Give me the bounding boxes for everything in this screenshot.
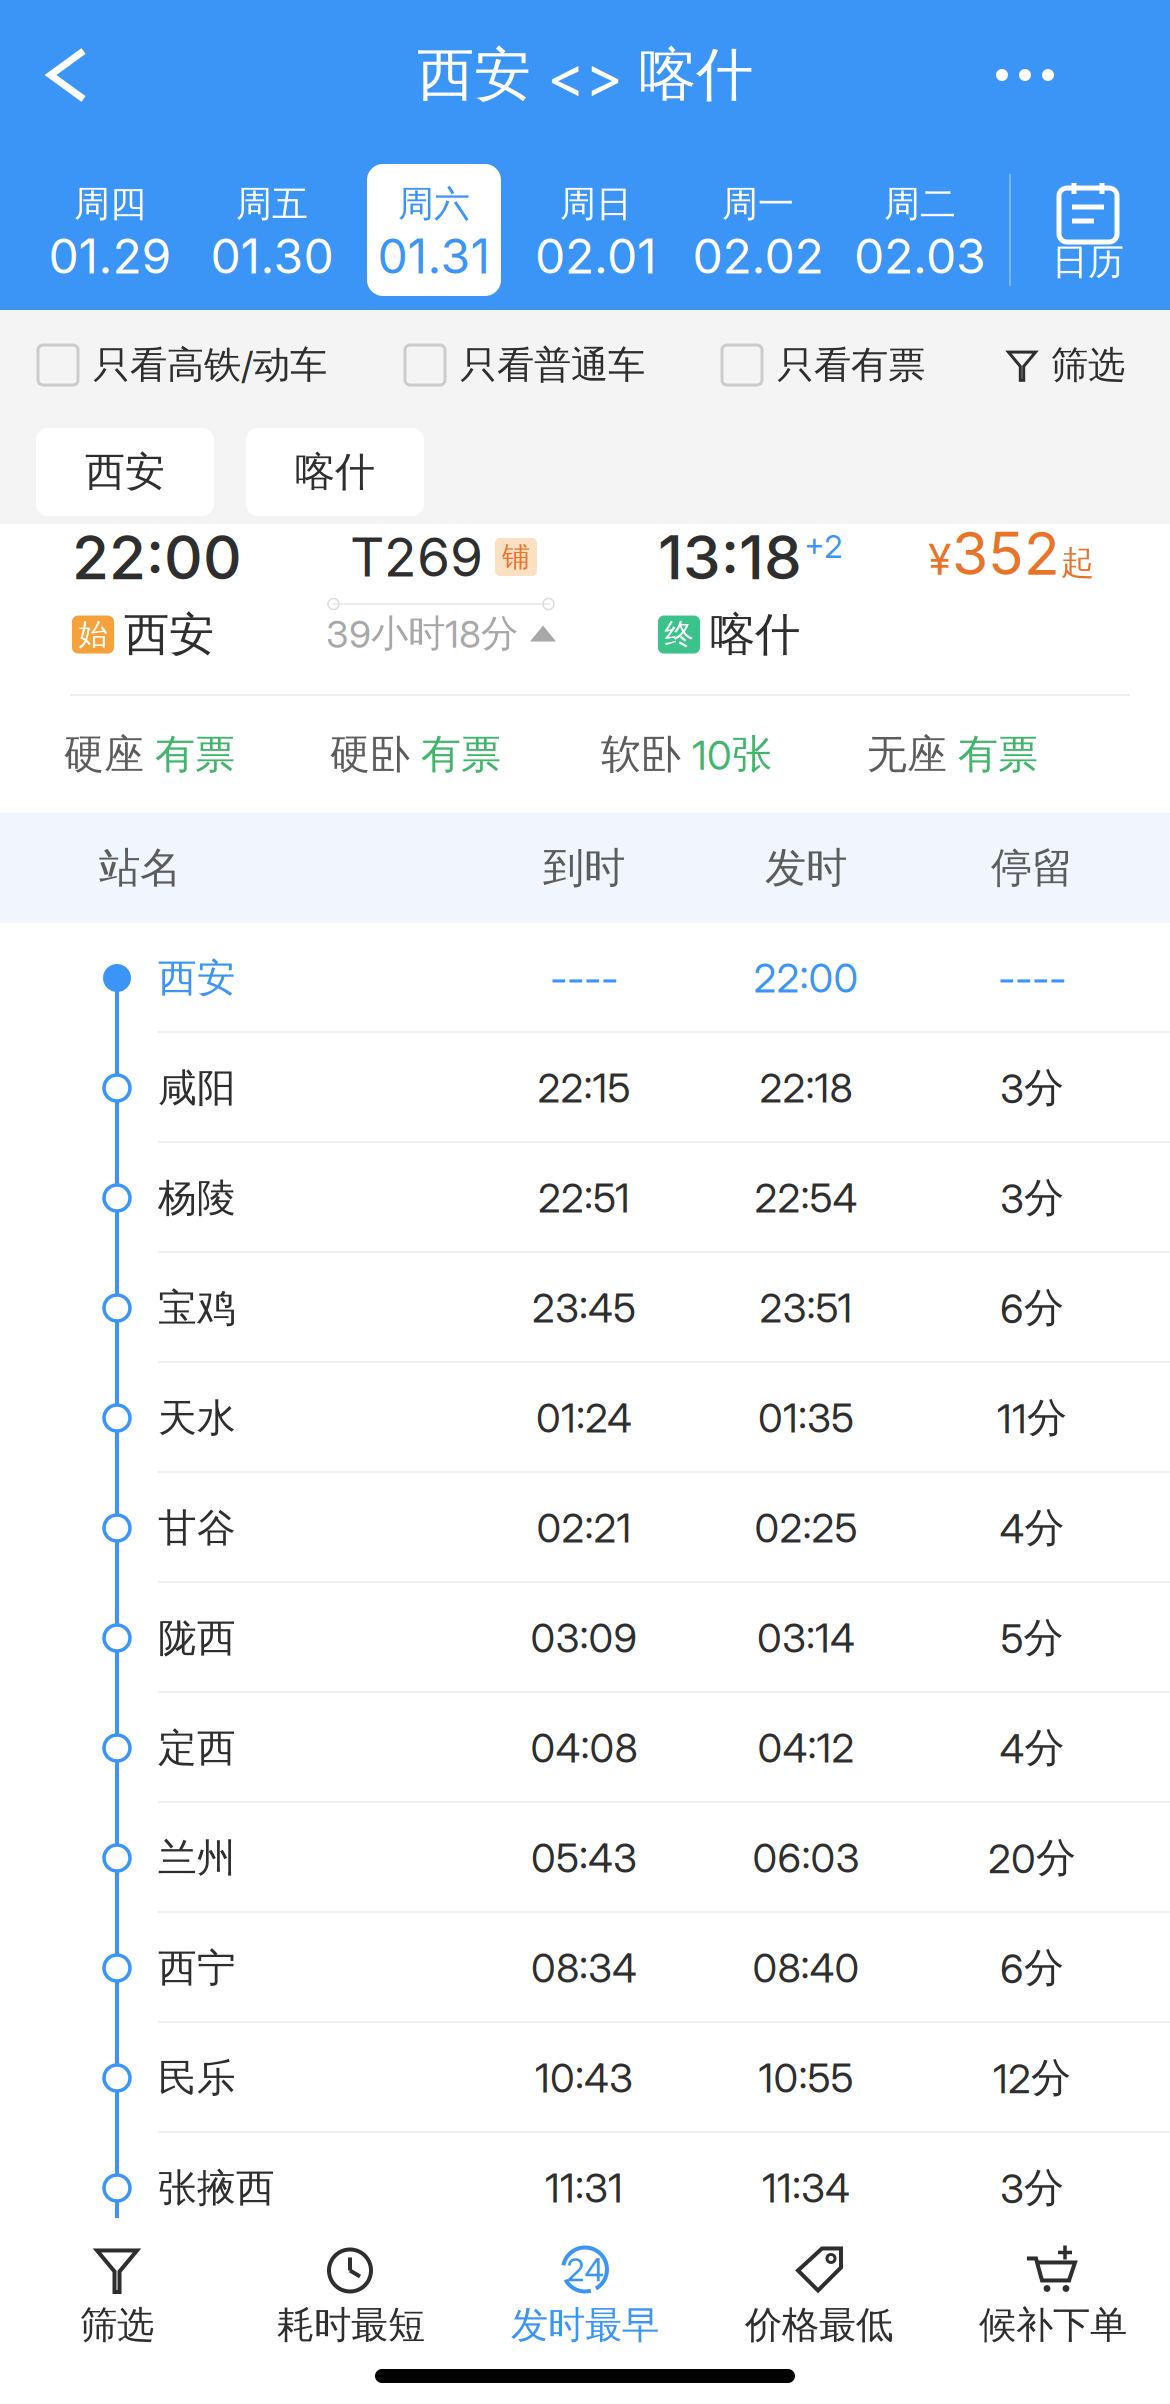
staticText: 22:00 [72, 521, 242, 594]
staticText: 6分 [1000, 1283, 1064, 1333]
staticText: 兰州 [158, 1834, 236, 1882]
staticText: 有票 [155, 729, 235, 780]
button[interactable]: 周日 [515, 150, 677, 310]
staticText: 喀什 [710, 606, 800, 663]
staticText: 站名 [99, 842, 181, 894]
button[interactable]: 周二 [839, 150, 1001, 310]
button[interactable]: 候补下单 [936, 2218, 1170, 2348]
staticText: ¥ [928, 533, 951, 585]
button[interactable]: 宝鸡 [0, 1253, 1170, 1363]
staticText: 08:40 [752, 1944, 859, 1992]
staticText: 02.01 [535, 227, 657, 285]
staticText: 22:15 [537, 1064, 630, 1112]
staticText: 06:03 [752, 1834, 859, 1882]
staticText: 周二 [884, 181, 956, 227]
staticText: 始 [78, 616, 107, 653]
staticText: 5分 [1000, 1613, 1063, 1663]
button[interactable]: 民乐 [0, 2023, 1170, 2133]
staticText: 周四 [74, 181, 146, 227]
staticText: 候补下单 [979, 2301, 1127, 2348]
staticText: 无座 [867, 729, 947, 780]
staticText: 杨陵 [158, 1174, 236, 1222]
button[interactable]: 陇西 [0, 1583, 1170, 1693]
button[interactable]: 耗时最短 [234, 2218, 468, 2348]
staticText: +2 [804, 527, 843, 566]
staticText: 02:25 [754, 1504, 857, 1552]
staticText: 只看有票 [777, 341, 925, 388]
staticText: 39小时18分 [326, 610, 518, 657]
button[interactable]: 咸阳 [0, 1033, 1170, 1143]
staticText: 01.31 [377, 227, 490, 285]
staticText: 352 [952, 518, 1060, 589]
staticText: 张掖西 [158, 2164, 275, 2212]
staticText: 铺 [502, 539, 530, 575]
staticText: 24 [566, 2250, 604, 2289]
staticText: 日历 [1052, 239, 1124, 285]
staticText: 周日 [560, 181, 632, 227]
staticText: 01:35 [758, 1394, 854, 1442]
button[interactable]: 兰州 [0, 1803, 1170, 1913]
staticText: 周六 [398, 181, 470, 227]
staticText: 有票 [421, 729, 501, 780]
button[interactable]: 西宁 [0, 1913, 1170, 2023]
button[interactable]: 只看普通车 [405, 310, 645, 420]
button[interactable]: 只看高铁/动车 [38, 310, 327, 420]
staticText: 01.30 [210, 227, 333, 285]
button[interactable]: 只看有票 [722, 310, 925, 420]
staticText: 咸阳 [158, 1064, 236, 1112]
staticText: 甘谷 [158, 1504, 236, 1552]
button[interactable]: 日历 [1008, 150, 1168, 310]
button[interactable]: 返回 [12, 20, 122, 130]
staticText: 20分 [988, 1833, 1076, 1883]
staticText: ---- [998, 954, 1066, 1002]
staticText: 08:34 [531, 1944, 637, 1992]
button[interactable]: 筛选 [1005, 310, 1125, 420]
button[interactable]: 喀什 [246, 428, 424, 516]
staticText: 发时最早 [511, 2301, 659, 2348]
button[interactable]: 24 [468, 2218, 702, 2348]
staticText: 22:00 [753, 954, 858, 1002]
button[interactable]: 西安 [0, 923, 1170, 1033]
staticText: 周一 [722, 181, 794, 227]
button[interactable]: 周四 [29, 150, 191, 310]
staticText: 西安 [158, 954, 236, 1002]
staticText: 发时 [765, 842, 847, 894]
staticText: 01.29 [48, 227, 171, 285]
button[interactable]: 张掖西 [0, 2133, 1170, 2243]
staticText: 10:55 [758, 2054, 853, 2102]
button[interactable]: 西安 [36, 428, 214, 516]
staticText: 终 [664, 616, 693, 653]
button[interactable]: 周六 [353, 150, 515, 310]
button[interactable]: 价格最低 [702, 2218, 936, 2348]
staticText: 03:14 [757, 1614, 855, 1662]
staticText: 13:18 [658, 521, 802, 594]
button[interactable]: 更多 [970, 20, 1080, 130]
staticText: 筛选 [80, 2301, 154, 2348]
button[interactable]: 周一 [677, 150, 839, 310]
staticText: 喀什 [295, 447, 375, 497]
staticText: 05:43 [531, 1834, 637, 1882]
button[interactable]: 杨陵 [0, 1143, 1170, 1253]
staticText: T269 [350, 525, 483, 589]
staticText: 4分 [999, 1503, 1064, 1553]
button[interactable]: 天水 [0, 1363, 1170, 1473]
staticText: 宝鸡 [158, 1284, 236, 1332]
staticText: 3分 [1000, 2163, 1064, 2213]
staticText: 22:51 [538, 1174, 630, 1222]
staticText: 02:21 [536, 1504, 631, 1552]
staticText: 11:31 [545, 2164, 623, 2212]
staticText: 西安 [124, 606, 214, 663]
button[interactable]: 甘谷 [0, 1473, 1170, 1583]
staticText: 4分 [999, 1723, 1064, 1773]
staticText: 03:09 [530, 1614, 637, 1662]
button[interactable]: 定西 [0, 1693, 1170, 1803]
staticText: 西宁 [158, 1944, 236, 1992]
staticText: 民乐 [158, 2054, 236, 2102]
staticText: 停留 [991, 842, 1073, 894]
staticText: 3分 [1000, 1063, 1064, 1113]
button[interactable]: 周五 [191, 150, 353, 310]
staticText: 天水 [158, 1394, 236, 1442]
button[interactable]: 筛选 [0, 2218, 234, 2348]
staticText: 11:34 [762, 2164, 850, 2212]
staticText: 只看高铁/动车 [93, 341, 327, 388]
